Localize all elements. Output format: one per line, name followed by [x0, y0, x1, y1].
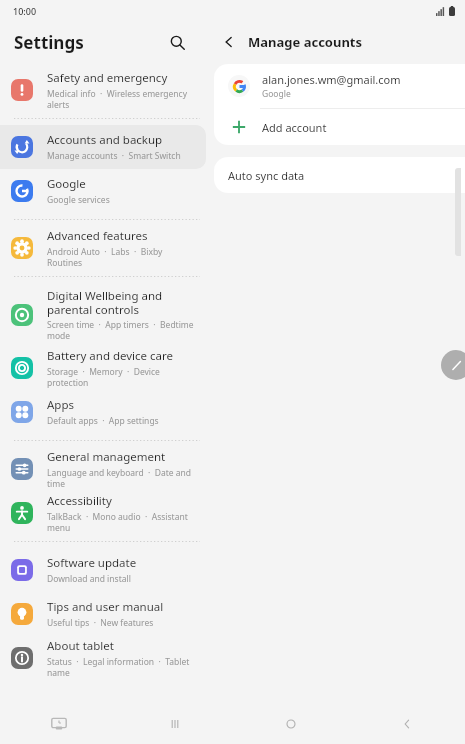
staticText: Auto sync data	[228, 168, 305, 183]
staticText: Google	[262, 88, 291, 100]
button[interactable]: Tips and user manual	[0, 592, 206, 636]
staticText: TalkBack · Mono audio · Assistant menu	[47, 511, 198, 533]
staticText: Android Auto · Labs · Bixby Routines	[47, 246, 198, 268]
staticText: Medical info · Wireless emergency alerts	[47, 88, 198, 110]
staticText: Status · Legal information · Tablet name	[47, 656, 198, 678]
staticText: Google services	[47, 194, 110, 206]
staticText: Language and keyboard · Date and time	[47, 467, 198, 489]
staticText: General management	[47, 449, 166, 465]
button[interactable]: Advanced features	[0, 226, 206, 270]
staticText: Settings	[14, 31, 84, 54]
staticText: Safety and emergency	[47, 70, 168, 86]
staticText: Useful tips · New features	[47, 617, 154, 629]
staticText: Accounts and backup	[47, 132, 163, 148]
staticText: Default apps · App settings	[47, 415, 159, 427]
staticText: About tablet	[47, 638, 114, 654]
button[interactable]: Accessibility	[0, 491, 206, 535]
staticText: alan.jones.wm@gmail.com	[262, 72, 401, 87]
button[interactable]: alan.jones.wm@gmail.com	[214, 64, 465, 108]
button[interactable]: General management	[0, 447, 206, 491]
staticText: Manage accounts	[248, 33, 363, 51]
staticText: Apps	[47, 397, 75, 413]
button[interactable]: Search	[164, 29, 190, 55]
button[interactable]: Add account	[214, 109, 465, 145]
staticText: Accessibility	[47, 493, 112, 509]
staticText: Google	[47, 176, 86, 192]
button[interactable]: Home	[233, 704, 349, 744]
staticText: Storage · Memory · Device protection	[47, 366, 198, 388]
button[interactable]: Edit	[441, 350, 465, 380]
staticText: Digital Wellbeing and parental controls	[47, 288, 198, 317]
staticText: Screen time · App timers · Bedtime mode	[47, 319, 198, 341]
staticText: Battery and device care	[47, 348, 174, 364]
staticText: Download and install	[47, 573, 131, 585]
staticText: Manage accounts · Smart Switch	[47, 150, 181, 162]
button[interactable]: Recents	[117, 704, 233, 744]
staticText: 10:00	[13, 5, 37, 17]
button[interactable]: Digital Wellbeing and parental controls	[0, 283, 206, 346]
button[interactable]: Accounts and backup	[0, 125, 206, 169]
button[interactable]: Screenshot	[0, 704, 117, 744]
button[interactable]: About tablet	[0, 636, 206, 680]
staticText: Advanced features	[47, 228, 148, 244]
button[interactable]: Battery and device care	[0, 346, 206, 390]
staticText: Add account	[262, 120, 327, 135]
button[interactable]: Software update	[0, 548, 206, 592]
staticText: Tips and user manual	[47, 599, 164, 615]
button[interactable]: Back	[216, 29, 242, 55]
button[interactable]: Google	[0, 169, 206, 213]
button[interactable]: Safety and emergency	[0, 68, 206, 112]
button[interactable]: Auto sync data	[214, 157, 465, 193]
button[interactable]: Apps	[0, 390, 206, 434]
staticText: Software update	[47, 555, 137, 571]
